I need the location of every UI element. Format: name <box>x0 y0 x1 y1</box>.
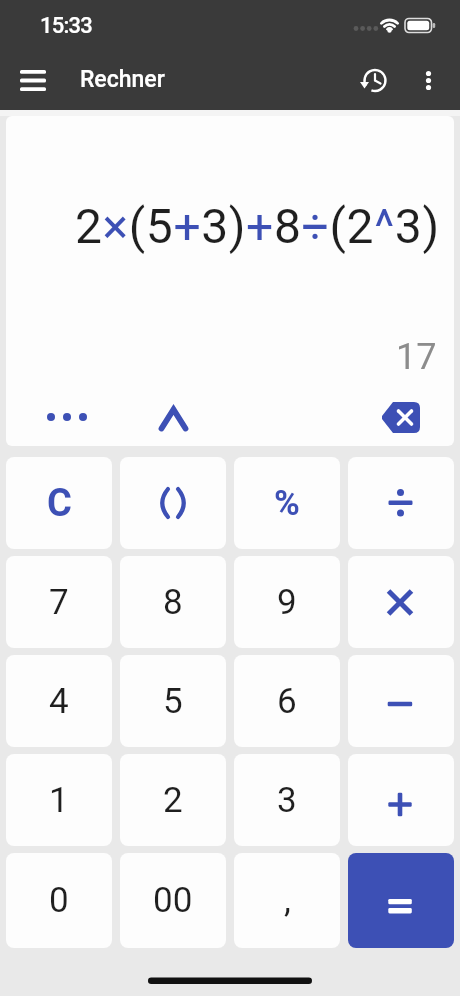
staticText: 1 <box>49 780 69 821</box>
staticText: 15:33 <box>40 13 92 39</box>
staticText: 0 <box>49 880 69 921</box>
staticText: 6 <box>277 681 297 722</box>
button[interactable] <box>348 556 454 648</box>
button[interactable]: , <box>234 853 340 948</box>
staticText: 9 <box>277 582 297 623</box>
button[interactable] <box>408 58 450 102</box>
button[interactable] <box>374 398 426 440</box>
staticText: 17 <box>396 336 437 378</box>
button[interactable]: 00 <box>120 853 226 948</box>
button[interactable] <box>8 65 58 97</box>
staticText: , <box>284 880 291 921</box>
button[interactable]: 7 <box>6 556 112 648</box>
button[interactable]: 2 <box>120 754 226 846</box>
staticText: % <box>274 483 300 524</box>
button[interactable]: 6 <box>234 655 340 747</box>
button[interactable]: 3 <box>234 754 340 846</box>
staticText: 3 <box>277 780 297 821</box>
button[interactable] <box>120 457 226 549</box>
staticText: C <box>47 481 72 526</box>
staticText: 00 <box>153 880 193 921</box>
button[interactable] <box>348 655 454 747</box>
staticText: 8 <box>163 582 183 623</box>
staticText: 2 <box>163 780 183 821</box>
button[interactable] <box>353 58 397 102</box>
button[interactable] <box>36 402 106 438</box>
staticText: Rechner <box>80 66 165 93</box>
button[interactable] <box>348 457 454 549</box>
button[interactable]: % <box>234 457 340 549</box>
button[interactable]: 5 <box>120 655 226 747</box>
button[interactable]: 9 <box>234 556 340 648</box>
button[interactable]: 1 <box>6 754 112 846</box>
button[interactable]: 0 <box>6 853 112 948</box>
staticText: 7 <box>49 582 69 623</box>
button[interactable] <box>151 400 196 440</box>
button[interactable]: 8 <box>120 556 226 648</box>
button[interactable] <box>348 853 454 948</box>
staticText: 2×(5+3)+8÷(2^3) <box>75 198 440 254</box>
staticText: 5 <box>163 681 183 722</box>
button[interactable] <box>348 754 454 846</box>
button[interactable]: C <box>6 457 112 549</box>
staticText: 4 <box>49 681 69 722</box>
button[interactable]: 4 <box>6 655 112 747</box>
